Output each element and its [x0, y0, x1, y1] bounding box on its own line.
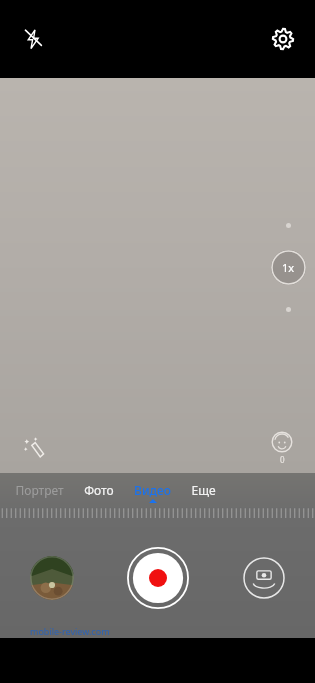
button[interactable]: Record: [127, 547, 189, 609]
button[interactable]: Gallery: [30, 556, 74, 600]
staticText: Видео: [134, 482, 171, 498]
staticText: mobile-review.com: [30, 625, 110, 637]
staticText: 1x: [282, 260, 295, 275]
button[interactable]: Beauty level: [264, 431, 300, 467]
staticText: 0: [280, 454, 285, 465]
button[interactable]: Видео: [132, 482, 173, 503]
staticText: Еще: [191, 482, 216, 498]
button[interactable]: Filters: [17, 431, 49, 463]
button[interactable]: Фото: [82, 482, 116, 503]
staticText: Портрет: [15, 482, 64, 498]
button[interactable]: Switch camera: [243, 557, 285, 599]
button[interactable]: Портрет: [13, 482, 66, 503]
button[interactable]: Flash off: [16, 22, 50, 56]
button[interactable]: 1x: [271, 250, 306, 285]
staticText: Фото: [84, 482, 114, 498]
button[interactable]: Еще: [189, 482, 218, 503]
button[interactable]: Settings: [265, 21, 301, 57]
